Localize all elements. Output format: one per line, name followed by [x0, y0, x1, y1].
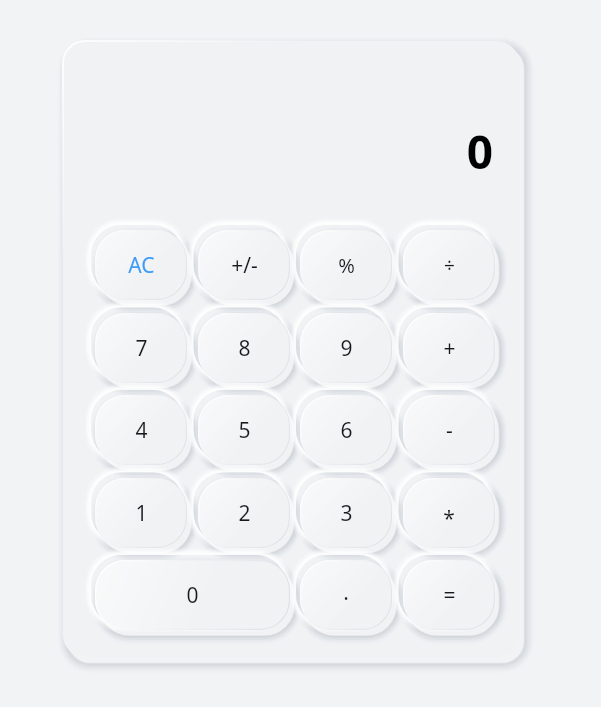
button[interactable]: 3 — [300, 478, 392, 548]
button[interactable]: Decimal point — [300, 560, 392, 630]
button[interactable]: 7 — [95, 313, 187, 383]
button[interactable]: 4 — [95, 395, 187, 465]
staticText: 0 — [466, 120, 493, 182]
staticText: + — [443, 334, 456, 363]
button[interactable]: 0 — [95, 560, 290, 630]
button[interactable]: Subtract — [403, 395, 495, 465]
button[interactable]: 9 — [300, 313, 392, 383]
staticText: * — [443, 504, 455, 533]
button[interactable]: Equals — [403, 560, 495, 630]
button[interactable]: 2 — [198, 478, 290, 548]
staticText: 3 — [340, 499, 353, 528]
button[interactable]: 1 — [95, 478, 187, 548]
staticText: 2 — [238, 499, 251, 528]
staticText: = — [443, 581, 456, 610]
button[interactable]: 5 — [198, 395, 290, 465]
button[interactable]: AC — [95, 230, 187, 300]
staticText: +/- — [231, 251, 258, 280]
button[interactable]: Divide — [403, 230, 495, 300]
button[interactable]: +/- — [198, 230, 290, 300]
button[interactable]: 8 — [198, 313, 290, 383]
staticText: 9 — [340, 334, 353, 363]
staticText: ÷ — [444, 252, 455, 278]
staticText: 5 — [238, 416, 251, 445]
staticText: 7 — [135, 334, 148, 363]
staticText: 4 — [135, 416, 148, 445]
staticText: 8 — [238, 334, 251, 363]
staticText: - — [446, 416, 453, 445]
staticText: % — [338, 252, 355, 279]
staticText: AC — [128, 251, 155, 280]
button[interactable]: Multiply — [403, 478, 495, 548]
staticText: . — [343, 578, 349, 607]
staticText: 6 — [340, 416, 353, 445]
button[interactable]: 6 — [300, 395, 392, 465]
button[interactable]: % — [300, 230, 392, 300]
staticText: 1 — [135, 499, 148, 528]
button[interactable]: Add — [403, 313, 495, 383]
staticText: 0 — [186, 581, 199, 610]
